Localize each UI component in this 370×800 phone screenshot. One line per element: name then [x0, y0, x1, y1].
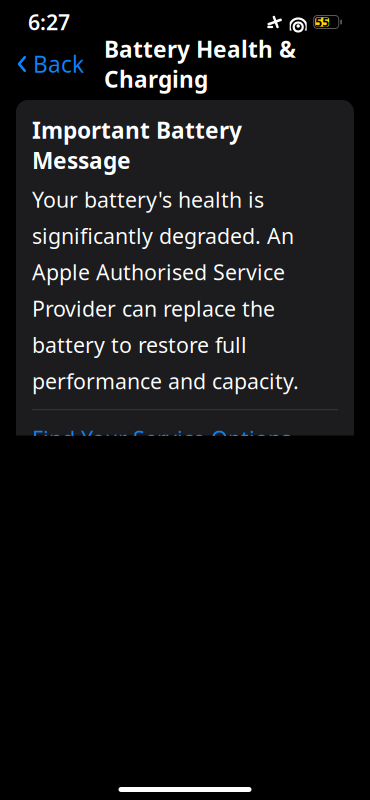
- staticText: Find Your Service Options: [32, 424, 291, 452]
- staticText: 55: [315, 14, 329, 30]
- staticText: Your battery's health is significantly d…: [32, 185, 299, 395]
- staticText: 6:27: [28, 8, 70, 36]
- staticText: Important Battery Message: [32, 115, 242, 175]
- button[interactable]: Back: [6, 43, 94, 85]
- staticText: Back: [33, 49, 84, 79]
- staticText: Battery Health & Charging: [104, 34, 296, 94]
- staticText: Peak Performance Capability: [32, 732, 229, 792]
- button[interactable]: Find Your Service Options: [32, 410, 338, 466]
